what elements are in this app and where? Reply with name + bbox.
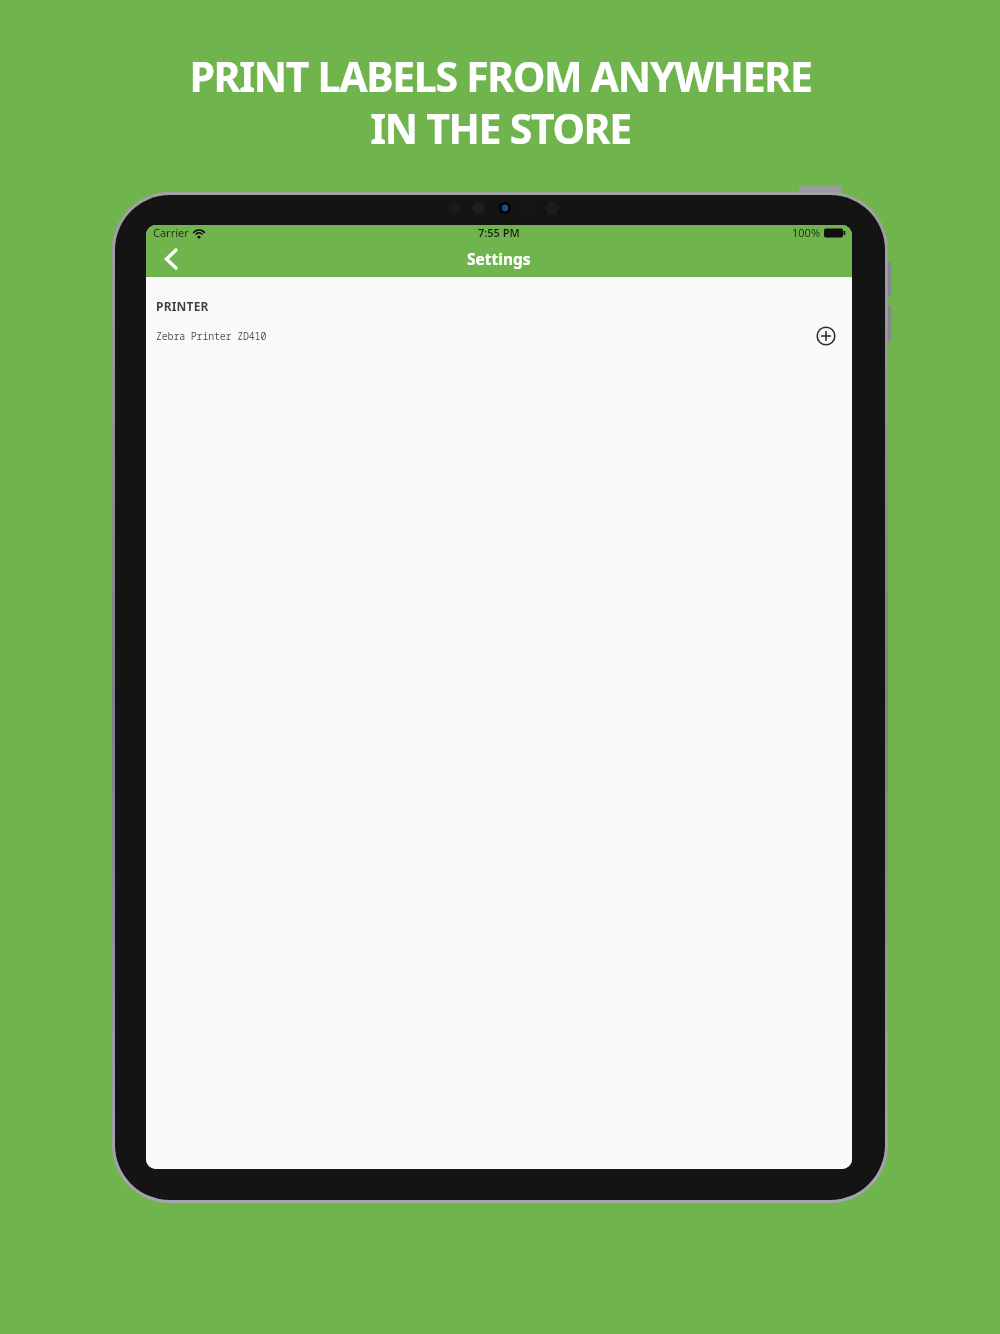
staticText: Carrier [153,225,189,240]
staticText: Settings [467,248,531,269]
button[interactable] [158,247,182,271]
staticText: PRINTER [156,298,209,314]
staticText: PRINT LABELS FROM ANYWHERE [189,48,812,104]
staticText: 7:55 PM [478,225,520,240]
staticText: IN THE STORE [370,100,631,156]
button[interactable]: Zebra Printer ZD410 [156,326,836,346]
staticText: Zebra Printer ZD410 [156,329,267,343]
staticText: 100% [792,225,821,240]
